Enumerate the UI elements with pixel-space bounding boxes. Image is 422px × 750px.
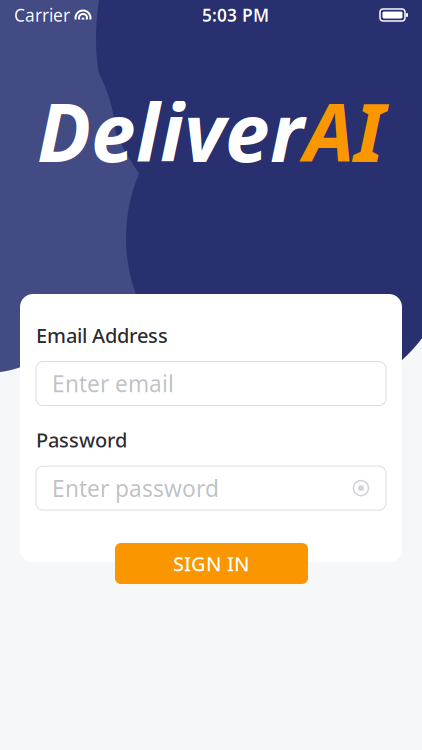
staticText: 5:03 PM xyxy=(202,3,269,26)
staticText: Enter email xyxy=(52,368,174,399)
staticText: Deliver xyxy=(37,78,304,184)
button[interactable]: Enter password xyxy=(36,466,386,510)
staticText: Carrier xyxy=(14,3,70,26)
button[interactable]: Enter email xyxy=(36,362,386,406)
button[interactable]: SIGN IN xyxy=(115,543,308,584)
staticText: AI xyxy=(304,78,385,184)
staticText: Enter password xyxy=(52,473,219,503)
staticText: Email Address xyxy=(36,322,168,349)
staticText: SIGN IN xyxy=(173,550,250,577)
staticText: Password xyxy=(36,427,127,453)
